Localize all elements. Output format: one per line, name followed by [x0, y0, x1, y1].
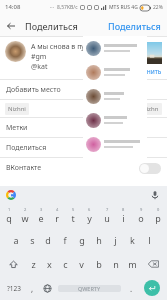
staticText: ВКонтакте [6, 163, 139, 173]
staticText: MTS RUS 4G [109, 4, 138, 11]
button[interactable]: 2 [17, 207, 33, 224]
staticText: 1 [8, 207, 11, 212]
staticText: 8,57KB/c [57, 4, 78, 11]
button[interactable]: Запятая [25, 283, 40, 294]
button[interactable] [83, 108, 147, 132]
button[interactable]: 1 [1, 207, 17, 224]
button[interactable]: Точка [124, 283, 139, 294]
button[interactable]: 4 [49, 207, 65, 224]
button[interactable]: 3 [33, 207, 49, 224]
staticText: Метки [6, 123, 28, 133]
staticText: 7 [106, 207, 109, 212]
staticText: , [31, 283, 34, 294]
button[interactable]: s [24, 234, 40, 246]
button[interactable]: d [40, 234, 56, 246]
staticText: l [148, 234, 151, 246]
staticText: p [155, 212, 161, 224]
button[interactable]: QWERTY [58, 285, 121, 292]
button[interactable]: Поделиться [102, 16, 167, 36]
staticText: Поделиться [6, 143, 47, 153]
button[interactable]: f [56, 234, 73, 246]
staticText: 14:08 [5, 3, 21, 11]
staticText: b [96, 258, 102, 270]
staticText: Nizhni [8, 105, 26, 113]
button[interactable]: Сменить язык [40, 284, 55, 293]
staticText: Nizhn [142, 105, 159, 113]
staticText: QWERTY [78, 285, 101, 292]
staticText: 22% [153, 4, 163, 11]
staticText: j [114, 234, 117, 246]
staticText: x [47, 258, 52, 270]
staticText: 6 [88, 207, 91, 212]
button[interactable]: n [107, 258, 124, 270]
button[interactable]: 8 [115, 207, 132, 224]
staticText: e [38, 212, 44, 224]
staticText: v [79, 258, 84, 270]
staticText: А мы снова в пути! [31, 42, 95, 52]
staticText: Поделиться [25, 20, 78, 32]
button[interactable]: Назад [0, 15, 22, 37]
staticText: h [96, 234, 102, 246]
staticText: 4 [56, 207, 59, 212]
button[interactable]: b [90, 258, 107, 270]
button[interactable]: 0 [149, 207, 166, 224]
button[interactable]: g [73, 234, 90, 246]
staticText: 0 [157, 207, 160, 212]
button[interactable] [83, 36, 147, 60]
staticText: 8 [122, 207, 125, 212]
button[interactable]: Метки [0, 118, 167, 137]
button[interactable]: ВКонтакте [0, 158, 167, 178]
button[interactable] [83, 84, 147, 108]
staticText: Изменить [130, 67, 162, 76]
button[interactable]: 5 [65, 207, 81, 224]
staticText: d [45, 234, 51, 246]
staticText: g [79, 234, 85, 246]
staticText: o [138, 212, 144, 224]
staticText: Поделиться [108, 20, 161, 32]
staticText: z [31, 258, 36, 270]
button[interactable] [83, 132, 147, 156]
staticText: n [113, 258, 119, 270]
button[interactable]: h [90, 234, 107, 246]
staticText: i [122, 212, 125, 224]
button[interactable]: Удалить [141, 260, 166, 268]
button[interactable]: x [41, 258, 57, 270]
button[interactable]: Google [5, 189, 16, 200]
button[interactable]: Ввод [144, 280, 160, 296]
button[interactable]: Поделиться [0, 138, 167, 157]
button[interactable]: Nizhn [139, 103, 162, 115]
button[interactable]: 7 [98, 207, 115, 224]
staticText: 2 [24, 207, 27, 212]
staticText: @kat [31, 62, 48, 72]
button[interactable]: Nizhni [5, 103, 29, 115]
button[interactable]: v [73, 258, 90, 270]
staticText: #gm [31, 52, 47, 62]
button[interactable]: 6 [81, 207, 98, 224]
button[interactable]: c [57, 258, 73, 270]
button[interactable]: k [124, 234, 141, 246]
staticText: c [63, 258, 68, 270]
staticText: f [63, 234, 67, 246]
button[interactable]: m [124, 258, 141, 270]
button[interactable]: Shift [1, 260, 25, 269]
staticText: k [130, 234, 135, 246]
staticText: w [21, 212, 29, 224]
button[interactable]: Изменить [130, 67, 162, 76]
button[interactable]: ?123 [2, 284, 25, 293]
button[interactable]: z [25, 258, 41, 270]
staticText: . [130, 283, 133, 294]
staticText: a [13, 234, 19, 246]
staticText: Добавить место [6, 85, 61, 95]
button[interactable]: Добавить место [0, 80, 167, 99]
button[interactable]: j [107, 234, 124, 246]
staticText: m [128, 258, 137, 270]
button[interactable]: a [8, 234, 24, 246]
staticText: y [87, 212, 92, 224]
button[interactable]: Голосовой ввод [149, 189, 161, 201]
staticText: q [6, 212, 12, 224]
button[interactable] [83, 60, 147, 84]
staticText: u [104, 212, 110, 224]
button[interactable]: l [141, 234, 158, 246]
button[interactable]: 9 [132, 207, 149, 224]
